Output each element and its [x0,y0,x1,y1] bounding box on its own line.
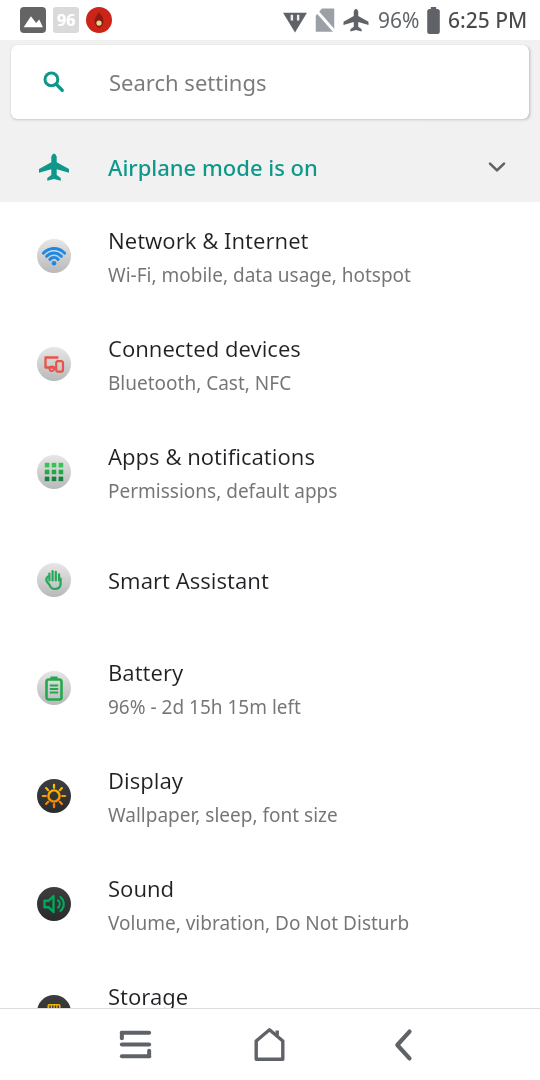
staticText: 96% - 2d 15h 15m left [108,694,301,720]
staticText: Volume, vibration, Do Not Disturb [108,910,410,936]
staticText: Network & Internet [108,225,309,255]
staticText: 96% [378,6,420,35]
button[interactable]: Airplane mode is on [0,132,540,202]
staticText: Wi-Fi, mobile, data usage, hotspot [108,262,411,288]
staticText: Display [108,765,184,795]
button[interactable]: Sound [0,850,540,958]
staticText: Smart Assistant [108,565,269,595]
staticText: Apps & notifications [108,441,315,471]
button[interactable]: Network & Internet [0,202,540,310]
button[interactable]: Display [0,742,540,850]
button[interactable]: Search settings [11,45,529,119]
staticText: Sound [108,873,175,903]
staticText: Battery [108,657,184,687]
staticText: Airplane mode is on [108,152,454,182]
button[interactable]: Storage [0,958,540,1066]
staticText: Storage [108,981,189,1011]
staticText: 6:25 PM [448,6,528,35]
staticText: Search settings [109,67,267,97]
button[interactable]: Battery [0,634,540,742]
button[interactable] [337,1009,472,1080]
staticText: 96 [57,9,76,31]
staticText: Wallpaper, sleep, font size [108,802,338,828]
staticText: Bluetooth, Cast, NFC [108,370,292,396]
staticText: Connected devices [108,333,301,363]
button[interactable]: Connected devices [0,310,540,418]
staticText: 64 GB used [108,1018,210,1044]
staticText: Permissions, default apps [108,478,338,504]
button[interactable] [202,1009,337,1080]
button[interactable]: Apps & notifications [0,418,540,526]
button[interactable]: Smart Assistant [0,526,540,634]
button[interactable] [68,1009,202,1080]
